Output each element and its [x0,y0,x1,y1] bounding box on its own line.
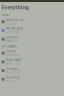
button[interactable]: Groceries [2,35,64,43]
button[interactable]: Flight AA21 [2,57,64,66]
staticText: 5.2 km [6,22,15,25]
button[interactable]: Weekly review [2,26,64,35]
staticText: Dentist [6,49,16,53]
staticText: Flight AA21 [6,58,23,62]
staticText: Weekly review [6,27,23,30]
staticText: TODAY [2,13,11,17]
button[interactable]: Team sync [2,66,64,75]
staticText: Fri 6:30 [6,79,17,83]
staticText: Groceries [6,35,19,39]
button[interactable]: Book club [2,75,64,84]
button[interactable]: Dentist [2,49,64,57]
staticText: Team sync [6,67,18,70]
button[interactable]: Morning run [2,17,64,26]
staticText: Wed 9:40 [6,62,20,65]
staticText: UPCOMING [2,45,17,48]
staticText: Morning run [6,18,24,22]
staticText: 2:00 PM [6,31,18,34]
staticText: Market St [6,39,17,43]
staticText: Tomorrow [6,53,19,57]
staticText: Book club [6,76,20,79]
staticText: Thu 11:00 [6,71,21,74]
staticText: Everything [2,4,29,11]
